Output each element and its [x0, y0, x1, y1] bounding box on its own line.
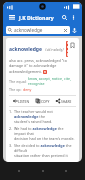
- button[interactable]: Menu: [7, 13, 16, 22]
- staticText: 1.: [9, 109, 13, 114]
- button[interactable]: LISTEN: [11, 98, 31, 104]
- staticText: The teacher would not acknowledge the st…: [14, 109, 76, 124]
- staticText: know, accept, notice, cite, recognise: [28, 76, 76, 86]
- staticText: n: [44, 70, 46, 74]
- staticText: acknowledge: [9, 46, 43, 53]
- staticText: also acc. press, acknowledged "to damage…: [9, 58, 68, 68]
- button[interactable]: Recents: [61, 166, 71, 176]
- button[interactable]: verb: [66, 41, 68, 57]
- staticText: acknowledgement.: [9, 69, 42, 74]
- button[interactable]: Home: [38, 166, 48, 176]
- button[interactable]: Voice search: [70, 26, 79, 34]
- staticText: 2.: [9, 126, 13, 131]
- staticText: 3.: [9, 143, 13, 148]
- staticText: The equal:: [9, 79, 27, 84]
- staticText: acknowledge: [14, 27, 43, 33]
- button[interactable]: Bookmark: [68, 41, 76, 49]
- button[interactable]: Search: [60, 13, 69, 22]
- button[interactable]: Clear: [62, 27, 68, 33]
- button[interactable]: COPY: [34, 98, 52, 104]
- button[interactable]: Back: [14, 166, 24, 176]
- staticText: /ək'nɒlɪdʒ/: [45, 47, 64, 52]
- staticText: deny: [23, 87, 32, 92]
- button[interactable]: acknowledge: [6, 26, 70, 34]
- staticText: SHARE: [61, 99, 72, 103]
- staticText: We had to acknowledge the impact that de…: [14, 126, 76, 141]
- staticText: The op:: [9, 87, 22, 92]
- button[interactable]: More options: [69, 13, 78, 22]
- staticText: She decided to acknowledge the difficult…: [14, 143, 76, 159]
- staticText: LISTEN: [18, 99, 29, 103]
- staticText: COPY: [41, 99, 50, 103]
- button[interactable]: SHARE: [54, 98, 74, 104]
- staticText: J.K Dictionary: [19, 14, 54, 21]
